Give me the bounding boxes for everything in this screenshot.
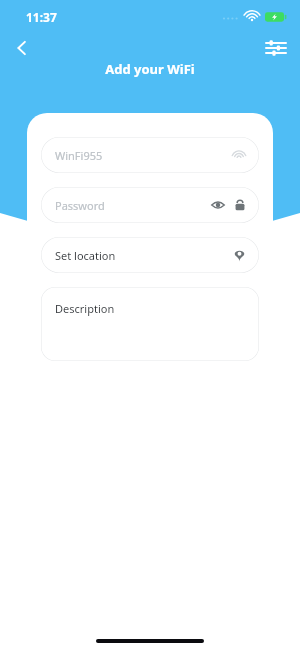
button[interactable]: Description	[41, 287, 259, 361]
button[interactable]: Set location	[41, 237, 259, 273]
staticText: 11:37	[26, 9, 57, 25]
button[interactable]: Show password	[211, 198, 225, 212]
staticText: WinFi955	[55, 148, 232, 163]
button[interactable]: Password	[41, 187, 259, 223]
button[interactable]: Back	[4, 30, 40, 66]
button[interactable]: WinFi955	[41, 137, 259, 173]
staticText: Set location	[55, 248, 233, 263]
button[interactable]: Settings	[258, 30, 294, 66]
staticText: Description	[55, 301, 115, 316]
staticText: Add your WiFi	[0, 60, 300, 78]
staticText: Password	[55, 198, 211, 213]
